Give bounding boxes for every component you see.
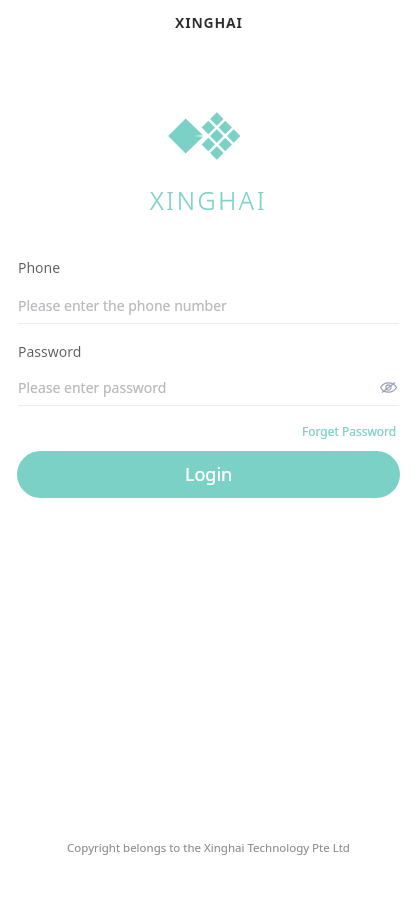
staticText: XINGHAI: [175, 13, 243, 32]
staticText: Please enter the phone number: [18, 296, 227, 315]
button[interactable]: Login: [17, 451, 400, 498]
button[interactable]: Please enter the phone number: [18, 294, 399, 316]
staticText: Phone: [18, 258, 61, 277]
button[interactable]: Show password: [377, 376, 399, 398]
staticText: Please enter password: [18, 378, 167, 397]
staticText: Password: [18, 342, 82, 361]
button[interactable]: Forget Password: [300, 421, 399, 441]
staticText: XINGHAI: [150, 183, 268, 217]
staticText: Login: [185, 462, 233, 487]
staticText: Copyright belongs to the Xinghai Technol…: [67, 840, 350, 856]
button[interactable]: Please enter password: [18, 378, 377, 397]
staticText: Forget Password: [302, 423, 397, 439]
